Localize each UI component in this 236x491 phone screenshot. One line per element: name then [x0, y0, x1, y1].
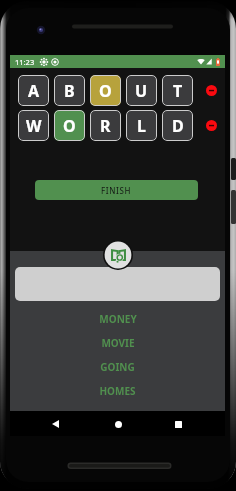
button[interactable]: GOING — [10, 355, 225, 379]
staticText: R — [100, 115, 111, 137]
button[interactable]: W — [18, 110, 49, 141]
button[interactable]: D — [162, 110, 193, 141]
staticText: 11:23 — [15, 57, 35, 67]
staticText: L — [137, 115, 146, 137]
staticText: MOVIE — [101, 336, 135, 350]
button[interactable]: MOVIE — [10, 331, 225, 355]
button[interactable]: A — [18, 75, 49, 106]
button[interactable]: T — [162, 75, 193, 106]
staticText: T — [173, 80, 183, 102]
staticText: A — [28, 80, 40, 102]
button[interactable]: O — [54, 110, 85, 141]
staticText: O — [63, 115, 76, 137]
staticText: FINISH — [101, 185, 132, 196]
button[interactable]: Back — [45, 414, 65, 434]
button[interactable]: B — [54, 75, 85, 106]
button[interactable]: Recent apps — [168, 414, 188, 434]
staticText: D — [172, 115, 184, 137]
button[interactable]: R — [90, 110, 121, 141]
staticText: MONEY — [99, 312, 137, 326]
button[interactable]: Dictionary — [103, 240, 133, 270]
staticText: U — [135, 80, 148, 102]
staticText: HOMES — [99, 384, 136, 398]
button[interactable]: HOMES — [10, 379, 225, 403]
button[interactable]: Delete row — [206, 120, 217, 131]
button[interactable]: Delete row — [206, 85, 217, 96]
button[interactable]: MONEY — [10, 307, 225, 331]
button[interactable]: O — [90, 75, 121, 106]
staticText: W — [26, 115, 42, 137]
button[interactable]: Home — [108, 414, 128, 434]
button[interactable]: FINISH — [35, 180, 198, 200]
staticText: B — [64, 80, 75, 102]
button[interactable] — [15, 267, 220, 301]
button[interactable]: L — [126, 110, 157, 141]
staticText: GOING — [100, 360, 135, 374]
staticText: O — [99, 80, 112, 102]
button[interactable]: U — [126, 75, 157, 106]
